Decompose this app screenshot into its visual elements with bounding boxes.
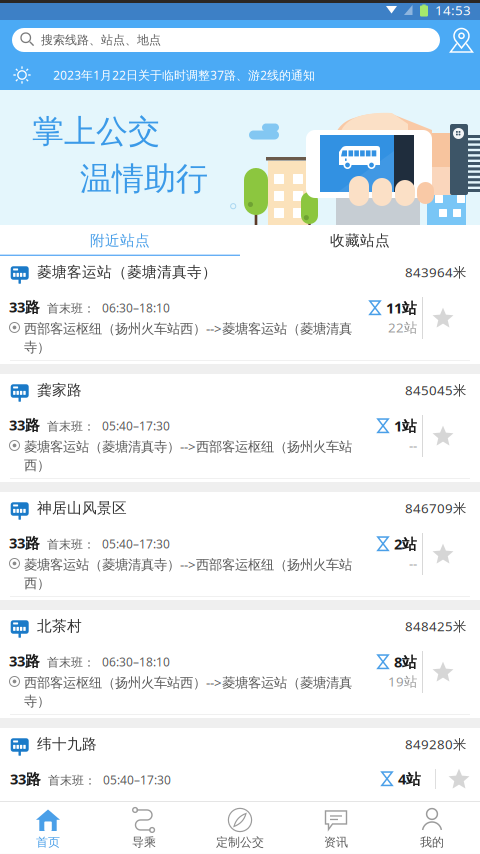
staticText: 848425米 <box>405 617 466 635</box>
staticText: 4站 <box>398 769 421 788</box>
staticText: 1站 <box>394 416 417 435</box>
staticText: 33路 <box>9 415 40 434</box>
staticText: 附近站点 <box>90 231 150 249</box>
button[interactable]: 龚家路 <box>0 374 480 482</box>
staticText: 寺） <box>24 339 50 356</box>
staticText: 05:40–17:30 <box>103 772 171 788</box>
staticText: 33路 <box>9 651 40 670</box>
staticText: 845045米 <box>405 381 466 399</box>
staticText: 05:40–17:30 <box>102 536 170 552</box>
staticText: 首末班： <box>47 537 95 552</box>
staticText: 8站 <box>394 652 417 671</box>
staticText: 西部客运枢纽（扬州火车站西）-->菱塘客运站（菱塘清真 <box>24 319 352 337</box>
staticText: 菱塘客运站（菱塘清真寺） <box>37 263 217 281</box>
staticText: 19站 <box>388 672 417 690</box>
staticText: 06:30–18:10 <box>102 300 170 316</box>
staticText: 11站 <box>386 298 417 317</box>
button[interactable]: 收藏 <box>428 297 458 339</box>
button[interactable]: 导乘 <box>96 802 192 854</box>
button[interactable]: 收藏 <box>428 415 458 457</box>
staticText: 首末班： <box>47 301 95 316</box>
button[interactable]: 我的 <box>384 802 480 854</box>
staticText: 849280米 <box>405 735 466 753</box>
staticText: 首末班： <box>47 419 95 434</box>
staticText: 西部客运枢纽（扬州火车站西）-->菱塘客运站（菱塘清真 <box>24 673 352 691</box>
staticText: 资讯 <box>324 835 348 850</box>
staticText: 龚家路 <box>37 381 82 399</box>
button[interactable]: 菱塘客运站（菱塘清真寺） <box>0 256 480 364</box>
staticText: 首末班： <box>47 655 95 670</box>
staticText: 06:30–18:10 <box>102 654 170 670</box>
staticText: 首末班： <box>48 773 96 788</box>
staticText: 西） <box>24 575 50 592</box>
staticText: 寺） <box>24 693 50 710</box>
button[interactable]: 纬十九路 <box>0 728 480 836</box>
button[interactable]: 地图 <box>445 24 478 56</box>
staticText: 我的 <box>420 835 444 850</box>
staticText: 846709米 <box>405 499 466 517</box>
staticText: 西） <box>24 457 50 474</box>
staticText: 05:40–17:30 <box>102 418 170 434</box>
staticText: 掌上公交 <box>32 112 160 151</box>
staticText: 搜索线路、站点、地点 <box>41 33 161 47</box>
button[interactable]: 附近站点 <box>0 225 240 256</box>
button[interactable]: 收藏 <box>428 651 458 693</box>
staticText: 温情助行 <box>80 159 208 199</box>
staticText: 北茶村 <box>37 617 82 635</box>
button[interactable]: 收藏站点 <box>240 225 480 256</box>
staticText: 导乘 <box>132 835 156 850</box>
button[interactable]: 首页 <box>0 802 96 854</box>
staticText: 菱塘客运站（菱塘清真寺）-->西部客运枢纽（扬州火车站 <box>24 555 352 573</box>
staticText: 菱塘客运站（菱塘清真寺）-->西部客运枢纽（扬州火车站 <box>24 437 352 455</box>
staticText: 33路 <box>9 297 40 316</box>
button[interactable]: 收藏 <box>428 533 458 575</box>
staticText: 843964米 <box>405 263 466 281</box>
button[interactable]: 资讯 <box>288 802 384 854</box>
staticText: -- <box>409 554 417 572</box>
staticText: -- <box>409 436 417 454</box>
staticText: 首页 <box>36 835 60 850</box>
button[interactable]: 神居山风景区 <box>0 492 480 600</box>
staticText: 33路 <box>9 533 40 552</box>
staticText: 定制公交 <box>216 835 264 850</box>
button[interactable]: 定制公交 <box>192 802 288 854</box>
button[interactable]: 搜索线路、站点、地点 <box>12 28 440 52</box>
staticText: 2站 <box>394 534 417 553</box>
button[interactable]: 北茶村 <box>0 610 480 718</box>
staticText: 14:53 <box>435 1 471 19</box>
staticText: 收藏站点 <box>330 231 390 249</box>
staticText: 33路 <box>10 769 41 788</box>
staticText: 22站 <box>388 318 417 336</box>
staticText: 纬十九路 <box>37 735 97 753</box>
staticText: 2023年1月22日关于临时调整37路、游2线的通知 <box>53 67 315 83</box>
staticText: 神居山风景区 <box>37 499 127 517</box>
